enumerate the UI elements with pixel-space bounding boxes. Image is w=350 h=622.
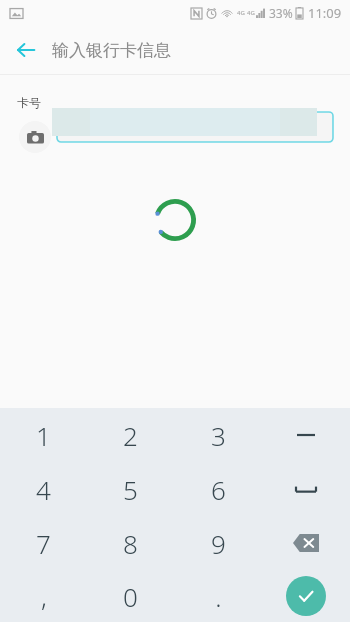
- staticText: 6: [211, 472, 226, 507]
- staticText: 输入银行卡信息: [52, 40, 171, 61]
- staticText: 8: [123, 526, 138, 561]
- staticText: 卡号: [17, 95, 41, 110]
- button[interactable]: 6: [174, 462, 262, 516]
- button[interactable]: Space: [262, 462, 350, 516]
- button[interactable]: [57, 112, 333, 142]
- staticText: 0: [123, 579, 138, 614]
- staticText: 33%: [269, 5, 293, 21]
- button[interactable]: 1: [0, 408, 87, 462]
- button[interactable]: Scan card with camera: [19, 121, 51, 153]
- button[interactable]: 3: [174, 408, 262, 462]
- staticText: 1: [36, 418, 51, 453]
- staticText: .: [215, 579, 222, 614]
- staticText: 9: [211, 526, 226, 561]
- button[interactable]: 2: [87, 408, 174, 462]
- staticText: 4G: [247, 9, 255, 17]
- button[interactable]: ,: [0, 570, 87, 622]
- button[interactable]: Backspace: [262, 516, 350, 570]
- staticText: 4G: [237, 9, 245, 17]
- button[interactable]: Dash: [262, 408, 350, 462]
- staticText: 4: [36, 472, 51, 507]
- staticText: 2: [123, 418, 138, 453]
- button[interactable]: Back: [6, 30, 46, 70]
- staticText: 5: [123, 472, 138, 507]
- button[interactable]: 5: [87, 462, 174, 516]
- staticText: ,: [41, 579, 47, 614]
- button[interactable]: Confirm: [262, 570, 350, 622]
- staticText: 11:09: [308, 4, 342, 22]
- button[interactable]: 8: [87, 516, 174, 570]
- button[interactable]: 7: [0, 516, 87, 570]
- button[interactable]: .: [174, 570, 262, 622]
- staticText: 3: [211, 418, 226, 453]
- button[interactable]: 0: [87, 570, 174, 622]
- button[interactable]: 9: [174, 516, 262, 570]
- staticText: 7: [36, 526, 51, 561]
- button[interactable]: 4: [0, 462, 87, 516]
